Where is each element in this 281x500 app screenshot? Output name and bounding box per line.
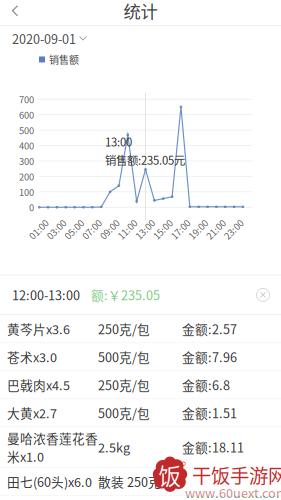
- staticText: 100: [19, 185, 34, 199]
- staticText: 2.5kg: [98, 438, 130, 456]
- staticText: 金额:1.51: [182, 403, 237, 422]
- staticText: 200: [19, 170, 34, 183]
- button[interactable]: Back: [0, 0, 34, 25]
- staticText: 金额:6.8: [182, 375, 230, 394]
- button[interactable]: 大黄x2.7: [0, 399, 281, 426]
- staticText: 11:00: [116, 223, 139, 237]
- staticText: 大黄x2.7: [7, 403, 57, 422]
- staticText: 黄芩片x3.6: [7, 319, 70, 338]
- staticText: 苍术x3.0: [7, 347, 57, 366]
- staticText: 400: [19, 139, 34, 152]
- button[interactable]: 2020-09-01: [0, 26, 281, 51]
- staticText: 金额:7.96: [182, 347, 237, 366]
- staticText: 500克/包: [98, 403, 150, 422]
- staticText: 500克/包: [98, 347, 150, 366]
- staticText: 销售额:235.05元: [105, 152, 185, 168]
- staticText: 金额:2.57: [182, 319, 237, 338]
- staticText: 23:00: [222, 223, 245, 237]
- button[interactable]: 黄芩片x3.6: [0, 315, 281, 342]
- staticText: 19:00: [187, 223, 210, 237]
- staticText: 03:00: [45, 223, 68, 237]
- button[interactable]: 田七(60头)x6.0: [0, 468, 281, 495]
- button[interactable]: 曼哈浓香莲花香 米x1.0: [0, 427, 281, 467]
- staticText: 600: [19, 108, 34, 121]
- staticText: 17:00: [169, 223, 192, 237]
- staticText: 干饭手游网: [192, 461, 281, 489]
- staticText: www.60uext.com: [185, 483, 281, 500]
- staticText: 12:00-13:00: [12, 286, 80, 304]
- staticText: 15:00: [152, 223, 175, 237]
- staticText: 250克/包: [98, 319, 150, 338]
- staticText: 饭: [158, 458, 181, 491]
- staticText: 额:￥235.05: [91, 286, 160, 304]
- staticText: 09:00: [98, 223, 121, 237]
- staticText: 01:00: [28, 223, 51, 237]
- button[interactable]: Close: [250, 282, 276, 308]
- staticText: 21:00: [205, 223, 228, 237]
- staticText: 金额:18.11: [182, 438, 244, 456]
- staticText: 散装 250克: [98, 472, 161, 490]
- staticText: 05:00: [63, 223, 86, 237]
- staticText: 田七(60头)x6.0: [7, 472, 92, 490]
- staticText: 250克/包: [98, 375, 150, 394]
- staticText: 07:00: [81, 223, 104, 237]
- staticText: 700: [19, 92, 34, 106]
- staticText: 13:00: [134, 223, 157, 237]
- staticText: 销售额: [49, 52, 79, 67]
- staticText: 0: [29, 200, 34, 214]
- staticText: 曼哈浓香莲花香 米x1.0: [7, 429, 98, 465]
- staticText: 500: [19, 123, 34, 137]
- button[interactable]: 巴戟肉x4.5: [0, 371, 281, 398]
- staticText: 巴戟肉x4.5: [7, 375, 70, 394]
- staticText: 2020-09-01: [12, 29, 76, 48]
- staticText: 300: [19, 154, 34, 168]
- staticText: 统计: [123, 0, 157, 23]
- button[interactable]: 苍术x3.0: [0, 343, 281, 370]
- staticText: 13:00: [105, 133, 132, 150]
